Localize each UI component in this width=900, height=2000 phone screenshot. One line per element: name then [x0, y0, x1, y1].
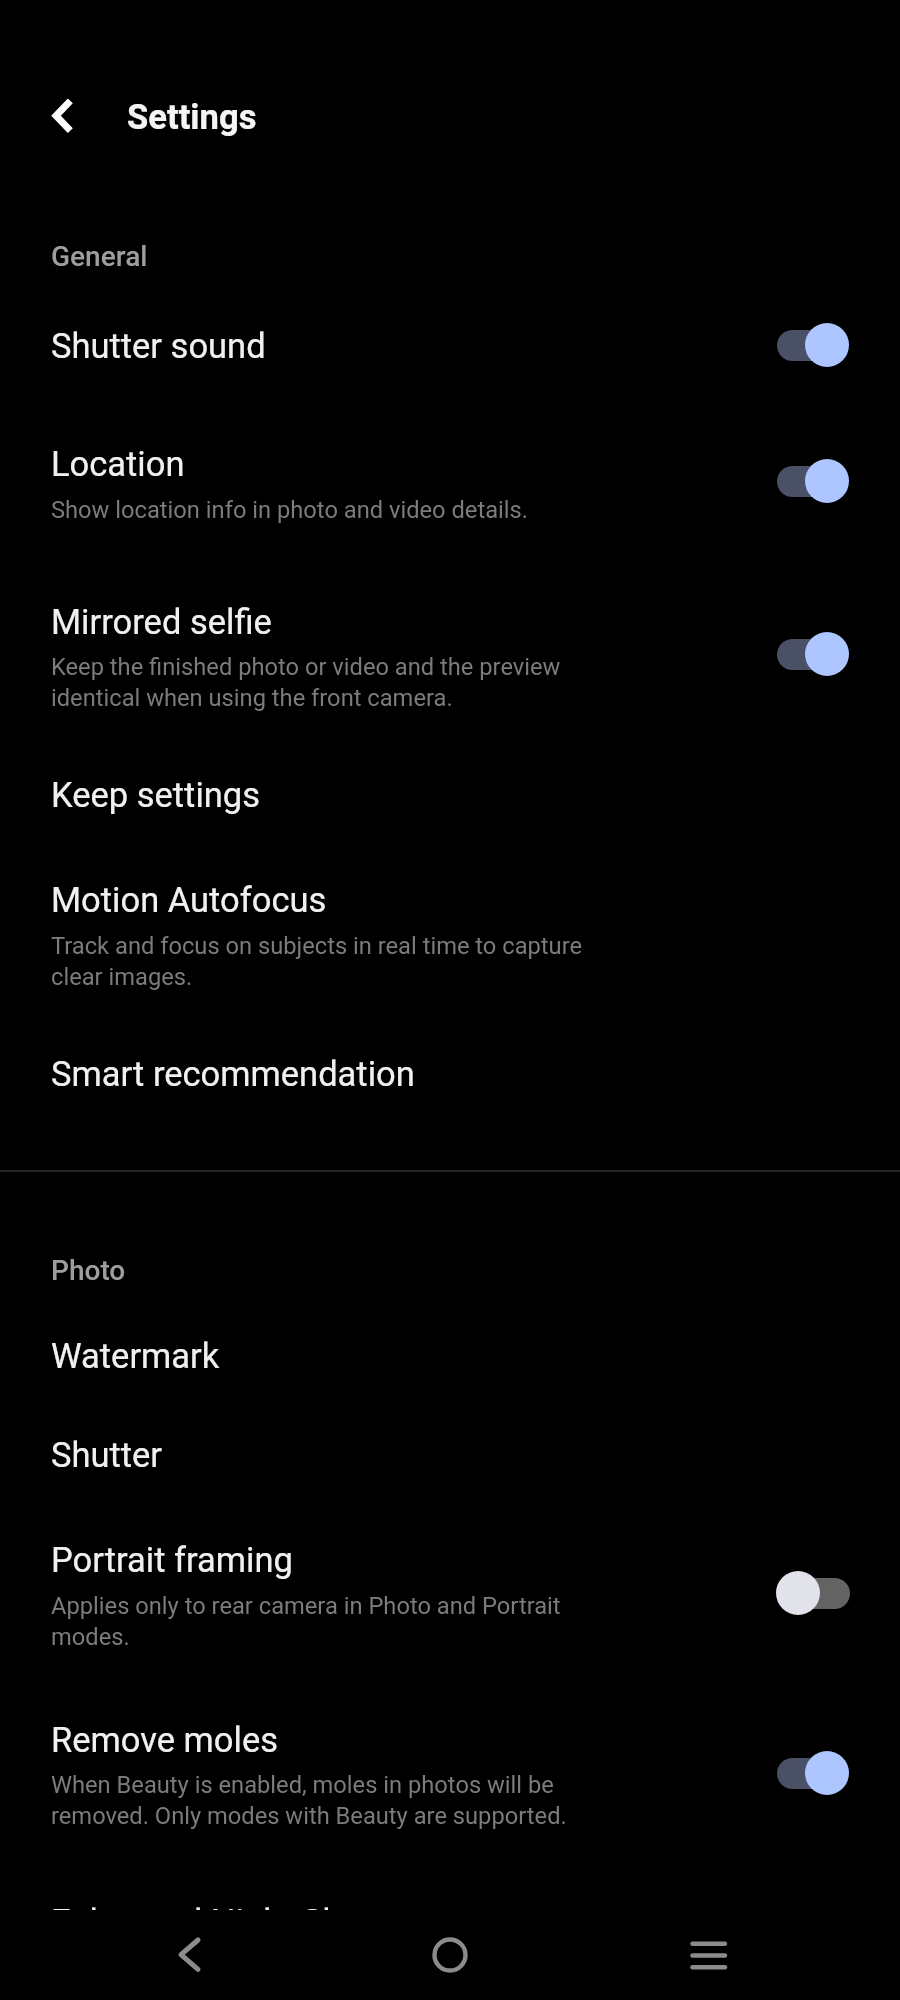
staticText: Mirrored selfie	[51, 602, 272, 642]
button[interactable]: Navigate up	[26, 80, 98, 152]
staticText: Location	[51, 444, 185, 484]
staticText: General	[51, 240, 148, 273]
button[interactable]: Shutter	[0, 1416, 900, 1512]
staticText: Photo	[51, 1254, 126, 1287]
button[interactable]: Remove moles	[0, 1696, 900, 1855]
staticText: Show location info in photo and video de…	[51, 496, 529, 524]
button[interactable]: Portrait framing	[0, 1516, 900, 1675]
staticText: Shutter	[51, 1435, 163, 1475]
staticText: Shutter sound	[51, 326, 266, 366]
staticText: Keep the finished photo or video and the…	[51, 653, 561, 711]
button[interactable]: Shutter sound	[0, 300, 900, 400]
staticText: Motion Autofocus	[51, 880, 327, 920]
staticText: Keep settings	[51, 775, 261, 815]
button[interactable]: Switch on	[776, 1751, 849, 1795]
button[interactable]: Switch on	[776, 459, 849, 503]
staticText: Smart recommendation	[51, 1054, 415, 1094]
button[interactable]: Switch on	[776, 632, 849, 676]
button[interactable]: Mirrored selfie	[0, 578, 900, 735]
button[interactable]: Home	[405, 1910, 495, 2000]
staticText: Remove moles	[51, 1720, 278, 1760]
button[interactable]: Enhanced Night Shot	[0, 1876, 900, 1975]
staticText: Settings	[127, 97, 257, 138]
staticText: Portrait framing	[51, 1540, 293, 1580]
staticText: When Beauty is enabled, moles in photos …	[51, 1771, 567, 1829]
button[interactable]: Recent apps	[664, 1910, 754, 2000]
button[interactable]: Motion Autofocus	[0, 858, 900, 1012]
button[interactable]: Location	[0, 420, 900, 545]
staticText: Watermark	[51, 1336, 220, 1376]
staticText: Applies only to rear camera in Photo and…	[51, 1592, 561, 1650]
button[interactable]: Back	[145, 1910, 235, 2000]
button[interactable]: Smart recommendation	[0, 1032, 900, 1132]
staticText: Enhanced Night Shot	[51, 1902, 373, 1942]
button[interactable]: Switch off	[776, 1571, 849, 1615]
staticText: Track and focus on subjects in real time…	[51, 932, 583, 990]
button[interactable]: Keep settings	[0, 755, 900, 855]
button[interactable]: Watermark	[0, 1315, 900, 1415]
button[interactable]: Switch on	[776, 323, 849, 367]
